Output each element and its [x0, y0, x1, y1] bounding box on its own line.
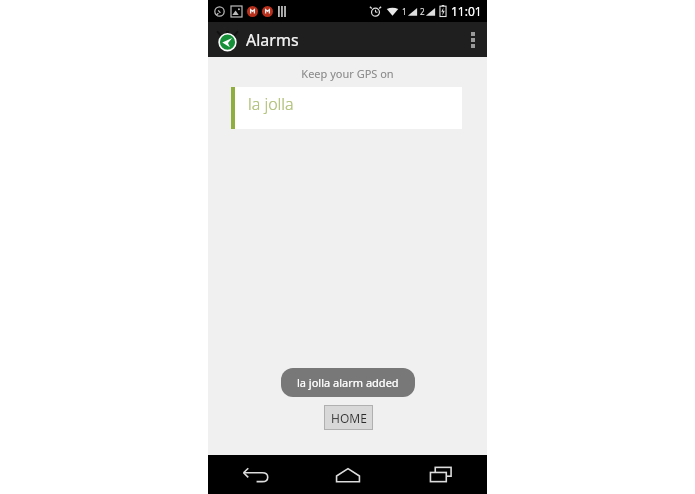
button[interactable]: Back — [208, 455, 301, 494]
staticText: Alarms — [246, 29, 299, 51]
staticText: 1 — [402, 6, 407, 17]
staticText: HOME — [331, 410, 367, 426]
button[interactable]: Recent apps — [394, 455, 487, 494]
button[interactable]: Home — [301, 455, 394, 494]
button[interactable]: Alarms — [217, 29, 299, 51]
staticText: 2 — [420, 6, 425, 17]
button[interactable]: la jolla — [231, 87, 462, 129]
staticText: la jolla alarm added — [297, 375, 399, 390]
staticText: la jolla — [248, 93, 294, 115]
button[interactable]: la jolla alarm added — [281, 368, 415, 397]
button[interactable]: More options — [459, 22, 487, 57]
staticText: 11:01 — [451, 3, 482, 19]
staticText: Keep your GPS on — [208, 66, 487, 81]
button[interactable]: HOME — [325, 406, 372, 429]
